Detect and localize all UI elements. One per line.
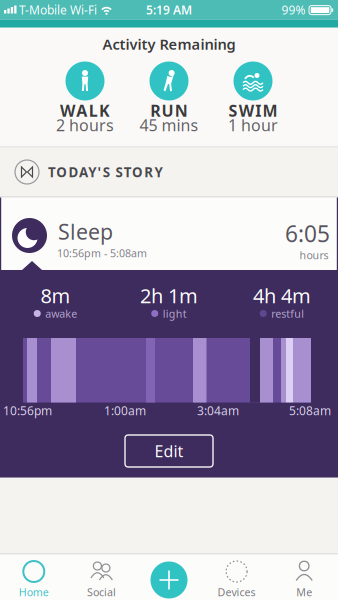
staticText: WALK — [60, 100, 110, 121]
staticText: 5:19 AM — [146, 2, 192, 18]
staticText: 1 hour — [228, 114, 278, 136]
staticText: Me — [296, 585, 312, 599]
staticText: Edit — [154, 440, 183, 462]
staticText: 45 mins — [139, 114, 198, 136]
staticText: 99% — [281, 2, 305, 18]
staticText: Sleep — [58, 217, 113, 246]
button[interactable]: TODAY'S STORY — [0, 147, 338, 196]
button[interactable]: Social — [68, 554, 135, 600]
staticText: 5:08am — [289, 402, 331, 418]
staticText: 10:56pm — [3, 402, 52, 418]
staticText: 1:00am — [104, 402, 146, 418]
button[interactable]: Log activity — [150, 561, 187, 598]
staticText: restful — [271, 306, 304, 321]
staticText: 3:04am — [197, 402, 239, 418]
staticText: light — [163, 306, 187, 321]
staticText: 4h 4m — [253, 282, 311, 309]
staticText: 2 hours — [56, 114, 114, 136]
staticText: 6:05 — [285, 218, 330, 248]
button[interactable]: Sleep — [0, 197, 338, 269]
button[interactable]: Home — [0, 554, 68, 600]
staticText: 10:56pm - 5:08am — [57, 246, 147, 260]
staticText: RUN — [150, 100, 188, 121]
staticText: SWIM — [229, 100, 277, 121]
staticText: awake — [45, 306, 77, 321]
staticText: hours — [299, 248, 328, 262]
button[interactable]: WALK — [43, 52, 127, 137]
staticText: 2h 1m — [140, 282, 198, 309]
button[interactable]: SWIM — [211, 52, 295, 137]
staticText: Home — [19, 585, 49, 599]
button[interactable]: Me — [270, 554, 338, 600]
staticText: Social — [87, 585, 116, 599]
staticText: Activity Remaining — [102, 34, 235, 54]
button[interactable]: Devices — [203, 554, 270, 600]
button[interactable]: RUN — [127, 52, 211, 137]
staticText: TODAY'S STORY — [48, 163, 163, 181]
staticText: 8m — [40, 282, 70, 309]
staticText: Devices — [218, 585, 256, 599]
staticText: T-Mobile Wi-Fi — [19, 2, 97, 18]
button[interactable]: Edit — [125, 435, 213, 467]
